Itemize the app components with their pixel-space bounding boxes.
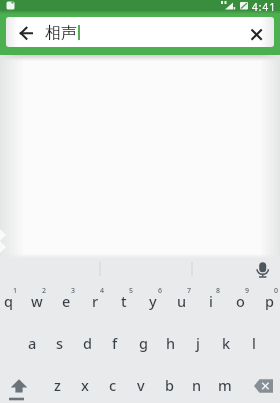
button[interactable]: i (197, 290, 225, 312)
button[interactable]: z (43, 374, 71, 396)
button[interactable]: n (183, 374, 211, 396)
staticText: 4 (100, 286, 105, 296)
button[interactable]: y (139, 290, 167, 312)
staticText: a (28, 333, 37, 353)
staticText: h (166, 333, 176, 353)
button[interactable]: s (46, 332, 74, 354)
button[interactable]: m (211, 374, 239, 396)
staticText: y (149, 291, 157, 311)
button[interactable]: t (110, 290, 138, 312)
button[interactable]: b (155, 374, 183, 396)
button[interactable]: d (73, 332, 101, 354)
button[interactable]: j (184, 332, 212, 354)
button[interactable]: x (71, 374, 99, 396)
staticText: u (177, 291, 187, 311)
staticText: d (83, 333, 92, 353)
staticText: 1 (13, 286, 18, 296)
staticText: k (222, 333, 231, 353)
staticText: j (196, 333, 200, 353)
staticText: 5 (129, 286, 134, 296)
staticText: 7 (187, 286, 192, 296)
staticText: o (236, 291, 245, 311)
staticText: v (137, 375, 145, 395)
staticText: c (109, 375, 117, 395)
button[interactable]: l (240, 332, 268, 354)
staticText: 3 (71, 286, 76, 296)
staticText: e (62, 291, 71, 311)
staticText: 相声 (45, 23, 77, 43)
staticText: t (121, 291, 127, 311)
staticText: p (265, 291, 274, 311)
staticText: w (31, 291, 43, 311)
button[interactable]: c (99, 374, 127, 396)
button[interactable]: v (127, 374, 155, 396)
staticText: f (112, 333, 118, 353)
staticText: 2 (42, 286, 47, 296)
button[interactable]: k (212, 332, 240, 354)
button[interactable]: 相声 (6, 17, 274, 47)
button[interactable]: e (52, 290, 80, 312)
staticText: 4:41 (252, 0, 277, 11)
staticText: q (4, 291, 13, 311)
staticText: x (81, 375, 89, 395)
staticText: 6 (158, 286, 163, 296)
staticText: i (209, 291, 213, 311)
button[interactable]: f (101, 332, 129, 354)
button[interactable]: g (129, 332, 157, 354)
staticText: 0 (274, 286, 279, 296)
staticText: g (139, 333, 148, 353)
staticText: 8 (216, 286, 221, 296)
staticText: m (218, 375, 232, 395)
button[interactable]: q (0, 290, 22, 312)
staticText: 9 (245, 286, 250, 296)
button[interactable]: a (18, 332, 46, 354)
button[interactable] (8, 20, 44, 46)
button[interactable]: h (157, 332, 185, 354)
button[interactable]: r (81, 290, 109, 312)
staticText: n (192, 375, 202, 395)
button[interactable]: w (23, 290, 51, 312)
button[interactable] (240, 21, 272, 47)
button[interactable]: o (226, 290, 254, 312)
staticText: b (165, 375, 174, 395)
staticText: l (252, 333, 256, 353)
staticText: r (92, 291, 99, 311)
button[interactable]: u (168, 290, 196, 312)
button[interactable]: p (255, 290, 280, 312)
staticText: z (54, 375, 61, 395)
staticText: s (56, 333, 64, 353)
